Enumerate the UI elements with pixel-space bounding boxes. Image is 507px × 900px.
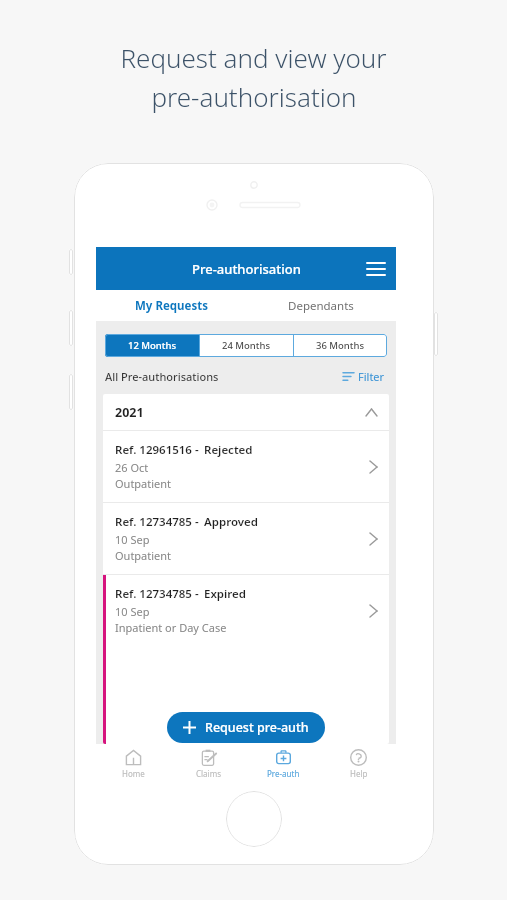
staticText: 2021 <box>115 404 144 421</box>
button[interactable]: Menu <box>356 249 396 289</box>
staticText: Request pre-auth <box>205 719 309 736</box>
button[interactable]: Claims <box>171 744 246 784</box>
staticText: Approved <box>204 514 258 530</box>
button[interactable]: Help <box>321 744 396 784</box>
staticText: 36 Months <box>316 339 365 352</box>
button[interactable]: 12 Months <box>105 334 199 357</box>
staticText: 24 Months <box>222 339 271 352</box>
staticText: pre-authorisation <box>151 79 357 114</box>
staticText: Outpatient <box>115 548 172 563</box>
button[interactable]: Request pre-auth <box>167 712 325 743</box>
staticText: My Requests <box>135 298 208 314</box>
button[interactable]: Filter <box>341 367 387 386</box>
button[interactable]: 24 Months <box>200 334 293 357</box>
button[interactable]: Home <box>96 744 171 784</box>
staticText: Request and view your <box>120 40 387 75</box>
staticText: Outpatient <box>115 476 172 491</box>
button[interactable]: Ref. 12734785 - <box>103 575 389 646</box>
button[interactable]: Ref. 12734785 - <box>103 503 389 574</box>
button[interactable]: 2021 <box>103 394 389 430</box>
button[interactable]: My Requests <box>96 290 246 321</box>
staticText: All Pre-authorisations <box>105 369 219 384</box>
staticText: Expired <box>204 586 246 602</box>
button[interactable]: Dependants <box>246 290 396 321</box>
button[interactable]: 36 Months <box>294 334 387 357</box>
staticText: Pre-authorisation <box>192 260 301 278</box>
staticText: 12 Months <box>128 339 177 352</box>
staticText: Inpatient or Day Case <box>115 620 227 635</box>
staticText: Pre-auth <box>267 768 300 779</box>
staticText: Rejected <box>204 442 253 458</box>
staticText: Filter <box>358 369 385 384</box>
button[interactable]: Ref. 12961516 - <box>103 431 389 502</box>
staticText: 26 Oct <box>115 460 149 475</box>
staticText: Ref. 12734785 - <box>115 586 199 602</box>
staticText: Home <box>122 768 145 779</box>
staticText: 10 Sep <box>115 532 150 547</box>
button[interactable]: Pre-auth <box>246 744 321 784</box>
staticText: Help <box>350 768 368 779</box>
staticText: Dependants <box>288 298 354 314</box>
staticText: Ref. 12734785 - <box>115 514 199 530</box>
staticText: Ref. 12961516 - <box>115 442 199 458</box>
staticText: Claims <box>196 768 221 779</box>
staticText: 10 Sep <box>115 604 150 619</box>
